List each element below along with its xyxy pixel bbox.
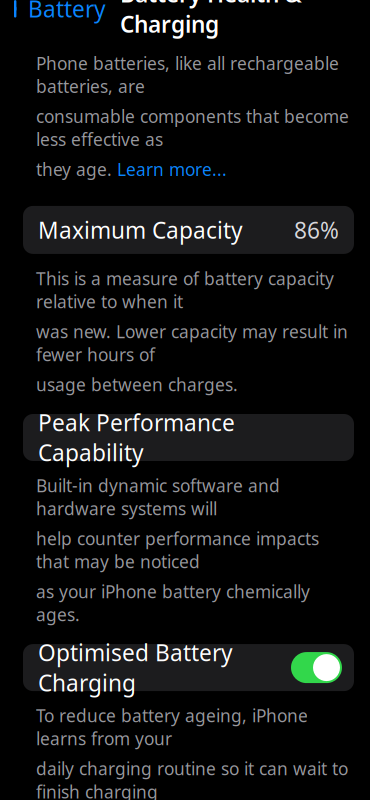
staticText: Optimised Battery Charging (38, 637, 233, 698)
staticText: Learn more... (117, 158, 227, 181)
staticText: they age. (36, 158, 117, 181)
staticText: consumable components that become less e… (36, 105, 349, 151)
button[interactable]: Optimised Battery Charging (23, 644, 354, 691)
staticText: This is a measure of battery capacity re… (36, 267, 334, 313)
staticText: Built-in dynamic software and hardware s… (36, 474, 280, 520)
staticText: as your iPhone battery chemically ages. (36, 580, 310, 626)
button[interactable]: Learn more... (117, 158, 227, 181)
staticText: was new. Lower capacity may result in fe… (36, 320, 348, 366)
staticText: daily charging routine so it can wait to… (36, 757, 348, 800)
staticText: 86% (294, 215, 339, 245)
staticText: Phone batteries, like all rechargeable b… (36, 52, 339, 98)
button[interactable]: Battery (0, 0, 114, 30)
staticText: usage between charges. (36, 373, 238, 396)
staticText: To reduce battery ageing, iPhone learns … (36, 704, 308, 750)
staticText: help counter performance impacts that ma… (36, 527, 319, 573)
staticText: Maximum Capacity (38, 215, 243, 245)
staticText: Battery (28, 0, 106, 24)
staticText: Peak Performance Capability (38, 407, 235, 468)
staticText: Battery Health & Charging (120, 0, 302, 39)
button[interactable]: Maximum Capacity (23, 206, 354, 254)
button[interactable]: Peak Performance Capability (23, 414, 354, 461)
